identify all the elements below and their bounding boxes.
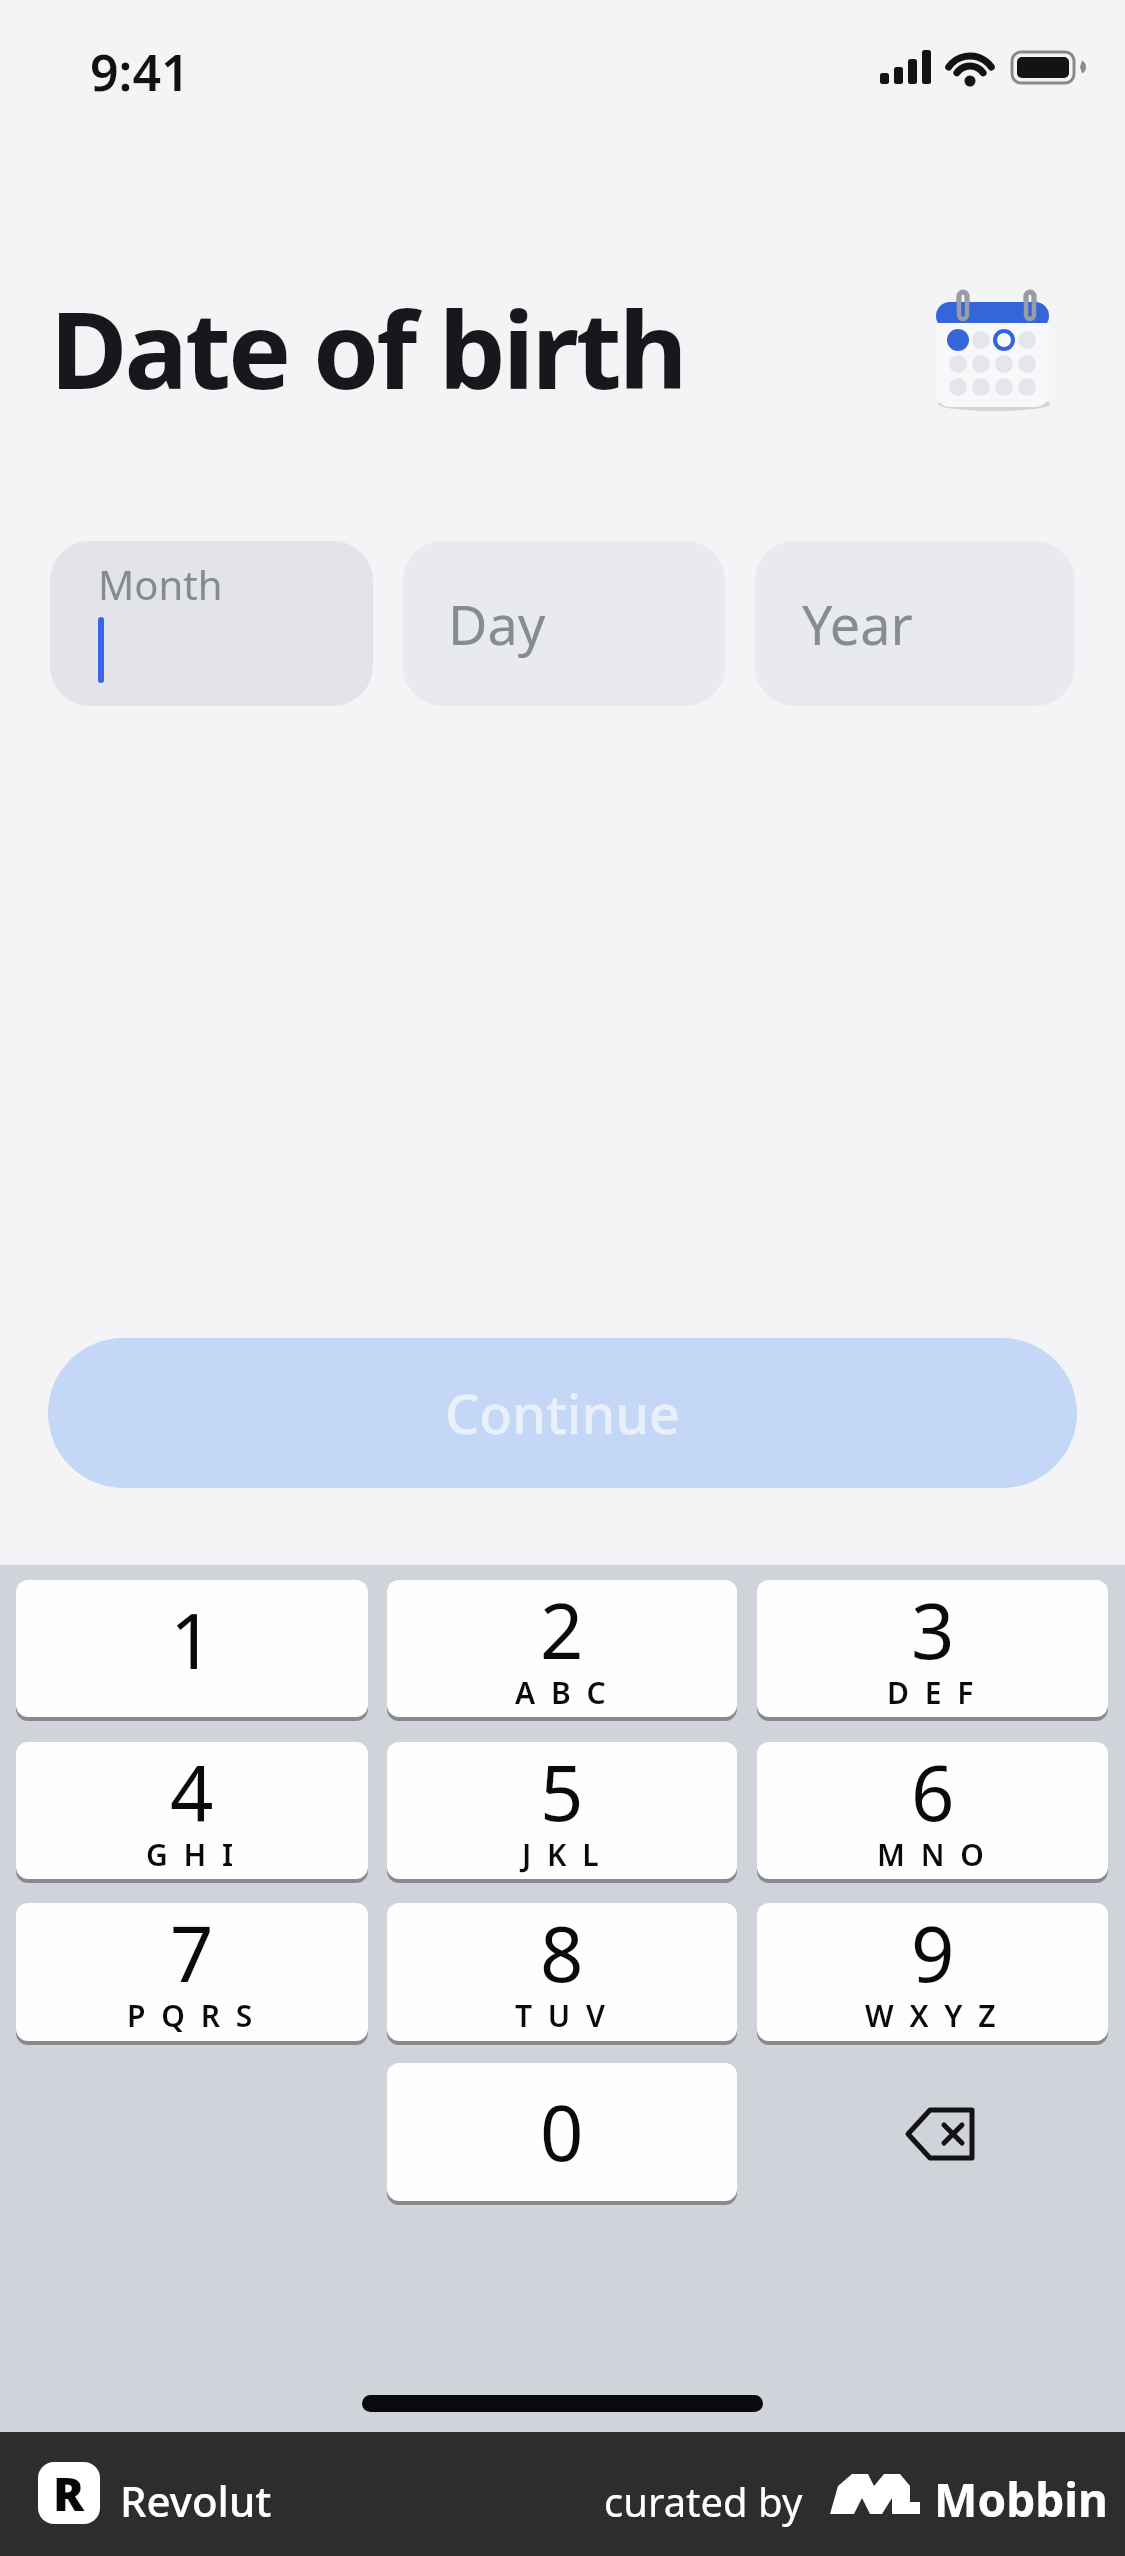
button[interactable]: Month [50, 541, 373, 706]
button[interactable]: 3 [757, 1580, 1108, 1717]
button[interactable]: R [38, 2462, 100, 2524]
button[interactable] [906, 2102, 986, 2166]
staticText: Date of birth [50, 276, 685, 420]
staticText: T U V [515, 1995, 610, 2036]
staticText: R [53, 2462, 85, 2524]
staticText: Day [448, 587, 546, 661]
staticText: Month [98, 557, 223, 611]
staticText: 3 [911, 1580, 955, 1682]
button[interactable]: 7 [16, 1903, 368, 2041]
staticText: P Q R S [127, 1995, 257, 2036]
staticText: J K L [522, 1834, 603, 1875]
button[interactable]: Year [755, 541, 1075, 706]
button[interactable]: 2 [387, 1580, 737, 1717]
staticText: 9:41 [90, 38, 190, 98]
staticText: G H I [146, 1834, 238, 1875]
staticText: D E F [887, 1672, 978, 1713]
button[interactable]: 4 [16, 1742, 368, 1879]
button[interactable]: Day [403, 541, 725, 706]
staticText: 9 [911, 1903, 955, 2005]
staticText: A B C [515, 1672, 610, 1713]
button[interactable]: 1 [16, 1580, 368, 1717]
staticText: 6 [911, 1742, 955, 1844]
staticText: Revolut [120, 2472, 272, 2529]
staticText: Continue [445, 1376, 681, 1450]
button[interactable]: 9 [757, 1903, 1108, 2041]
staticText: 8 [540, 1903, 584, 2005]
staticText: 1 [170, 1588, 214, 1692]
button[interactable]: 0 [387, 2063, 737, 2201]
staticText: W X Y Z [865, 1995, 1000, 2036]
staticText: 7 [170, 1903, 214, 2005]
staticText: 4 [170, 1742, 214, 1844]
staticText: M N O [877, 1834, 988, 1875]
button[interactable]: 8 [387, 1903, 737, 2041]
staticText: Year [802, 587, 913, 661]
staticText: curated by [604, 2474, 803, 2528]
staticText: 2 [540, 1580, 584, 1682]
staticText: Mobbin [934, 2468, 1108, 2531]
button[interactable]: 6 [757, 1742, 1108, 1879]
button[interactable]: Continue [48, 1338, 1077, 1488]
staticText: 0 [540, 2080, 584, 2184]
button[interactable]: 5 [387, 1742, 737, 1879]
staticText: 5 [540, 1742, 584, 1844]
